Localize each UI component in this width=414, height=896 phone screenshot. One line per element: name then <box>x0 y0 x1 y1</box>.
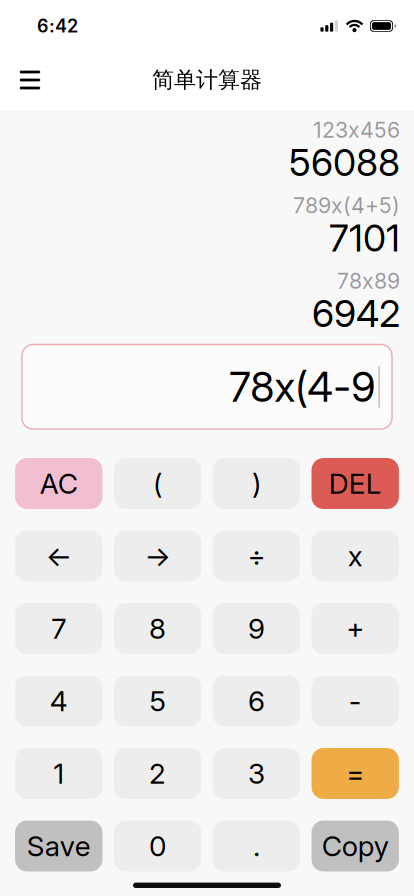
button[interactable]: + <box>311 603 399 654</box>
staticText: = <box>346 757 364 790</box>
staticText: 123x456 <box>313 117 400 143</box>
button[interactable]: . <box>213 820 300 871</box>
staticText: AC <box>40 467 78 500</box>
button[interactable]: 3 <box>213 748 300 799</box>
staticText: ÷ <box>247 539 265 573</box>
staticText: 4 <box>50 684 68 718</box>
staticText: . <box>253 829 260 863</box>
staticText: DEL <box>329 467 382 500</box>
staticText: Copy <box>322 829 389 863</box>
staticText: 0 <box>149 829 166 863</box>
button[interactable]: → <box>114 530 201 581</box>
staticText: + <box>346 612 364 645</box>
button[interactable]: Copy <box>311 820 399 871</box>
staticText: 简单计算器 <box>152 66 262 94</box>
staticText: 6:42 <box>37 15 78 37</box>
staticText: 78x(4-9 <box>229 362 375 412</box>
staticText: 78x89 <box>337 268 400 294</box>
button[interactable]: x <box>311 530 399 581</box>
button[interactable]: ) <box>213 458 300 509</box>
button[interactable]: ( <box>114 458 201 509</box>
button[interactable]: = <box>311 748 399 799</box>
staticText: 6 <box>248 684 265 718</box>
staticText: ( <box>153 467 162 500</box>
button[interactable]: 0 <box>114 820 201 871</box>
staticText: ← <box>46 539 72 573</box>
button[interactable]: DEL <box>311 458 399 509</box>
staticText: 7 <box>51 612 66 645</box>
staticText: - <box>349 684 362 718</box>
button[interactable]: Save <box>15 820 102 871</box>
staticText: 1 <box>53 757 64 790</box>
staticText: 5 <box>150 684 166 718</box>
button[interactable]: ÷ <box>213 530 300 581</box>
staticText: 56088 <box>289 140 400 185</box>
button[interactable]: 4 <box>15 675 102 726</box>
staticText: 3 <box>248 757 265 790</box>
staticText: 2 <box>149 757 166 790</box>
staticText: x <box>348 539 363 573</box>
staticText: 789x(4+5) <box>293 193 400 218</box>
button[interactable]: 1 <box>15 748 102 799</box>
button[interactable]: 6 <box>213 675 300 726</box>
staticText: 8 <box>149 612 166 645</box>
staticText: → <box>145 539 171 573</box>
button[interactable]: - <box>311 675 399 726</box>
staticText: ) <box>252 467 261 500</box>
button[interactable]: 9 <box>213 603 300 654</box>
staticText: 9 <box>248 612 265 645</box>
staticText: 7101 <box>329 215 400 261</box>
staticText: Save <box>27 829 91 863</box>
button[interactable]: 7 <box>15 603 102 654</box>
staticText: 6942 <box>312 291 400 336</box>
button[interactable]: 5 <box>114 675 201 726</box>
button[interactable]: Menu <box>0 52 60 108</box>
button[interactable]: AC <box>15 458 102 509</box>
button[interactable]: 2 <box>114 748 201 799</box>
button[interactable]: ← <box>15 530 102 581</box>
button[interactable]: 8 <box>114 603 201 654</box>
